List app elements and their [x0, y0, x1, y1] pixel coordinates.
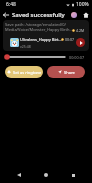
- staticText: Saved successfully: [12, 11, 65, 19]
- staticText: 00:00:07: [69, 55, 85, 60]
- staticText: 100%: [76, 1, 89, 8]
- staticText: Save path: /storage/emulated/0/Media/Voi…: [5, 22, 75, 32]
- staticText: 6:48: [6, 1, 16, 8]
- button[interactable]: Recents: [65, 167, 81, 183]
- staticText: 00:07: [65, 37, 74, 42]
- staticText: Ultralens_Happy Birthday: [20, 37, 62, 42]
- staticText: v25:48: [20, 44, 31, 49]
- staticText: Set as ringtone: [13, 70, 42, 75]
- button[interactable]: Share: [47, 66, 85, 78]
- button[interactable]: Home: [38, 167, 54, 183]
- staticText: Share: [64, 70, 75, 75]
- button[interactable]: Back: [0, 9, 12, 21]
- button[interactable]: Back: [11, 167, 27, 183]
- button[interactable]: Profile: [68, 9, 80, 21]
- staticText: 4.2M: [76, 28, 85, 33]
- button[interactable]: Home: [80, 9, 92, 21]
- button[interactable]: Play: [76, 38, 85, 47]
- button[interactable]: Set as ringtone: [5, 66, 43, 78]
